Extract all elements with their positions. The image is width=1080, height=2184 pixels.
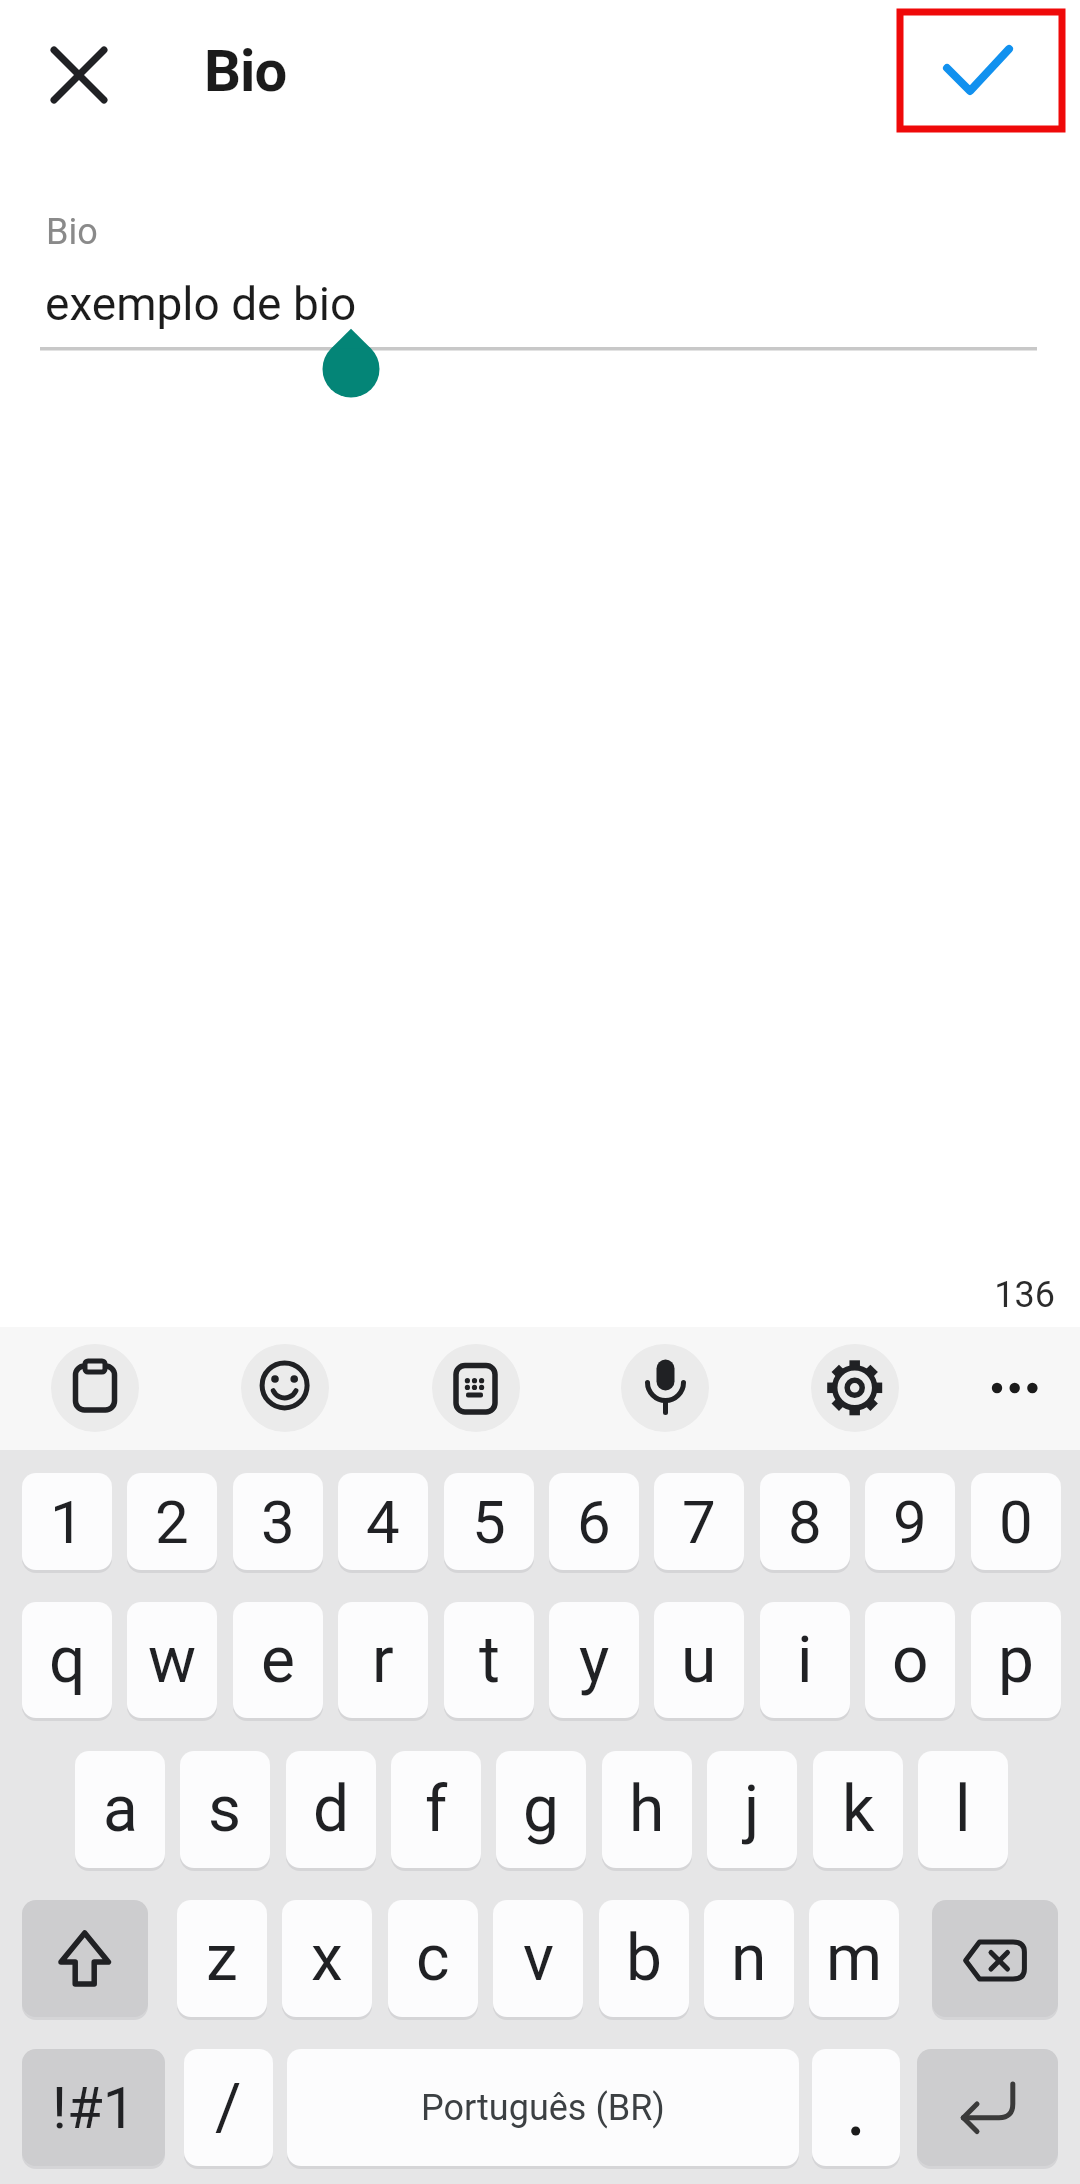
button[interactable]: f xyxy=(391,1751,481,1868)
staticText: b xyxy=(626,1921,662,1996)
button[interactable] xyxy=(969,1344,1057,1432)
staticText: 8 xyxy=(788,1487,822,1557)
button[interactable]: a xyxy=(75,1751,165,1868)
button[interactable]: !#1 xyxy=(22,2049,165,2166)
staticText: 2 xyxy=(155,1487,189,1557)
button[interactable] xyxy=(932,1900,1058,2017)
staticText: x xyxy=(311,1921,343,1996)
button[interactable]: y xyxy=(549,1602,639,1718)
button[interactable]: j xyxy=(707,1751,797,1868)
staticText: d xyxy=(313,1772,350,1847)
staticText: w xyxy=(148,1623,197,1698)
staticText: z xyxy=(206,1921,238,1996)
staticText: 9 xyxy=(893,1487,927,1557)
staticText: k xyxy=(842,1772,875,1847)
staticText: 3 xyxy=(261,1487,295,1557)
button[interactable] xyxy=(432,1344,520,1432)
staticText: y xyxy=(579,1623,610,1698)
staticText: 1 xyxy=(50,1487,84,1557)
button[interactable]: u xyxy=(654,1602,744,1718)
button[interactable]: x xyxy=(282,1900,372,2017)
button[interactable]: s xyxy=(180,1751,270,1868)
button[interactable]: h xyxy=(602,1751,692,1868)
button[interactable] xyxy=(241,1344,329,1432)
staticText: exemplo de bio xyxy=(45,277,357,331)
staticText: Português (BR) xyxy=(421,2087,665,2129)
button[interactable]: z xyxy=(177,1900,267,2017)
staticText: e xyxy=(261,1623,295,1698)
button[interactable]: e xyxy=(233,1602,323,1718)
staticText: n xyxy=(731,1921,767,1996)
staticText: h xyxy=(629,1772,665,1847)
button[interactable]: 5 xyxy=(444,1473,534,1570)
button[interactable] xyxy=(812,2049,900,2166)
staticText: !#1 xyxy=(52,2074,136,2142)
staticText: q xyxy=(49,1623,86,1698)
button[interactable]: n xyxy=(704,1900,794,2017)
button[interactable]: / xyxy=(184,2049,273,2166)
button[interactable]: q xyxy=(22,1602,112,1718)
staticText: g xyxy=(523,1772,559,1847)
staticText: f xyxy=(425,1772,448,1847)
button[interactable]: r xyxy=(338,1602,428,1718)
button[interactable] xyxy=(40,195,1040,355)
button[interactable] xyxy=(29,25,129,125)
staticText: s xyxy=(208,1772,242,1847)
staticText: Bio xyxy=(46,211,98,253)
staticText: v xyxy=(523,1921,554,1996)
button[interactable] xyxy=(51,1344,139,1432)
button[interactable]: o xyxy=(865,1602,955,1718)
staticText: 5 xyxy=(472,1487,506,1557)
button[interactable]: 0 xyxy=(971,1473,1061,1570)
button[interactable]: p xyxy=(971,1602,1061,1718)
staticText: 6 xyxy=(577,1487,611,1557)
button[interactable]: 7 xyxy=(654,1473,744,1570)
button[interactable]: 9 xyxy=(865,1473,955,1570)
button[interactable]: 2 xyxy=(127,1473,217,1570)
button[interactable]: 6 xyxy=(549,1473,639,1570)
staticText: 136 xyxy=(855,1274,1055,1316)
staticText: p xyxy=(998,1623,1034,1698)
button[interactable]: d xyxy=(286,1751,376,1868)
button[interactable]: c xyxy=(388,1900,478,2017)
staticText: 0 xyxy=(999,1487,1033,1557)
staticText: i xyxy=(797,1623,813,1698)
button[interactable]: m xyxy=(809,1900,899,2017)
staticText: l xyxy=(955,1772,971,1847)
button[interactable]: 3 xyxy=(233,1473,323,1570)
button[interactable]: l xyxy=(918,1751,1008,1868)
button[interactable]: g xyxy=(496,1751,586,1868)
staticText: Bio xyxy=(204,37,287,105)
staticText: m xyxy=(826,1921,883,1996)
staticText: r xyxy=(372,1623,394,1698)
button[interactable]: 4 xyxy=(338,1473,428,1570)
staticText: a xyxy=(103,1772,138,1847)
button[interactable] xyxy=(811,1344,899,1432)
button[interactable] xyxy=(22,1900,148,2017)
button[interactable] xyxy=(621,1344,709,1432)
staticText: j xyxy=(744,1772,760,1847)
button[interactable]: 1 xyxy=(22,1473,112,1570)
button[interactable]: k xyxy=(813,1751,903,1868)
button[interactable]: 8 xyxy=(760,1473,850,1570)
button[interactable]: t xyxy=(444,1602,534,1718)
staticText: o xyxy=(892,1623,929,1698)
staticText: u xyxy=(681,1623,717,1698)
staticText: / xyxy=(215,2070,242,2145)
button[interactable] xyxy=(920,22,1040,122)
staticText: 4 xyxy=(366,1487,400,1557)
button[interactable]: i xyxy=(760,1602,850,1718)
button[interactable] xyxy=(917,2049,1058,2166)
button[interactable]: b xyxy=(599,1900,689,2017)
button[interactable]: v xyxy=(493,1900,583,2017)
staticText: 7 xyxy=(682,1487,716,1557)
button[interactable]: w xyxy=(127,1602,217,1718)
staticText: t xyxy=(479,1623,500,1698)
button[interactable]: Português (BR) xyxy=(287,2049,799,2166)
staticText: c xyxy=(416,1921,450,1996)
